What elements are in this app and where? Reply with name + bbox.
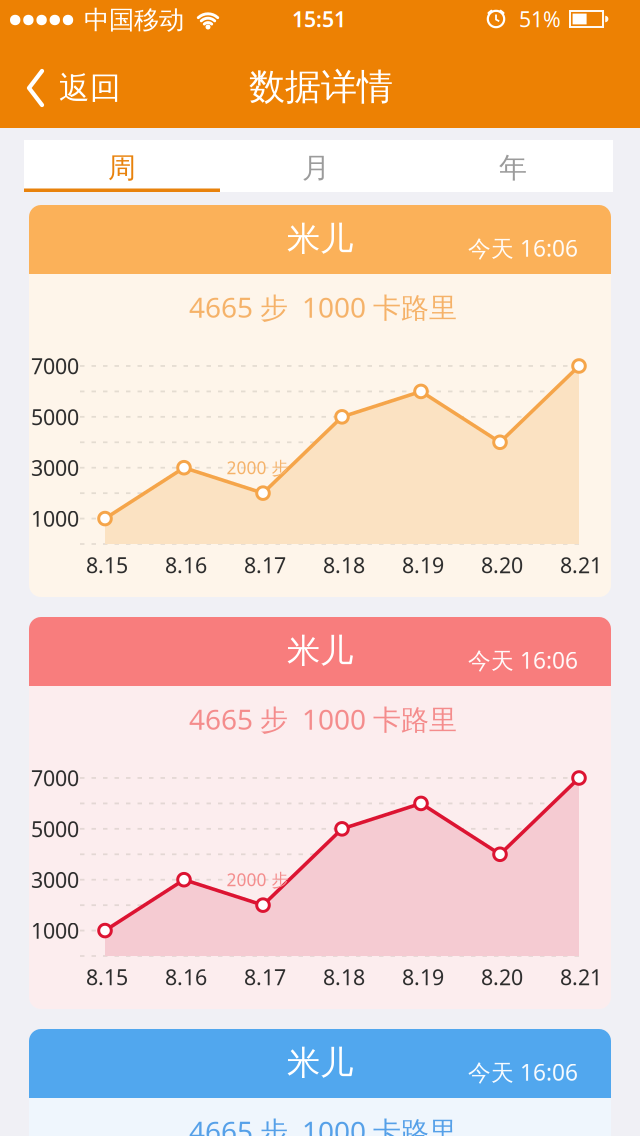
staticText: 8.20 bbox=[481, 963, 523, 991]
staticText: 8.16 bbox=[165, 551, 207, 579]
staticText: 月 bbox=[302, 151, 330, 185]
staticText: 米儿 bbox=[287, 1042, 353, 1083]
staticText: 8.15 bbox=[86, 551, 128, 579]
staticText: 米儿 bbox=[287, 218, 353, 259]
staticText: 5000 bbox=[31, 815, 79, 843]
staticText: 年 bbox=[499, 151, 527, 185]
staticText: 8.18 bbox=[323, 963, 365, 991]
staticText: 8.19 bbox=[402, 963, 444, 991]
button[interactable]: 返回 bbox=[24, 63, 134, 113]
staticText: 1000 bbox=[31, 504, 79, 533]
button[interactable]: 月 bbox=[218, 143, 414, 192]
staticText: 4665 步 1000 卡路里 bbox=[189, 288, 457, 326]
staticText: 8.17 bbox=[244, 963, 286, 991]
staticText: 返回 bbox=[59, 69, 121, 107]
staticText: 中国移动 bbox=[84, 4, 184, 35]
staticText: 8.20 bbox=[481, 551, 523, 579]
staticText: 今天 16:06 bbox=[468, 233, 578, 263]
staticText: 4665 步 1000 卡路里 bbox=[189, 1112, 457, 1136]
staticText: 8.17 bbox=[244, 551, 286, 579]
staticText: 2000 步 bbox=[226, 456, 288, 479]
staticText: 8.16 bbox=[165, 963, 207, 991]
button[interactable]: 年 bbox=[414, 143, 611, 192]
staticText: 15:51 bbox=[292, 5, 346, 33]
staticText: 7000 bbox=[31, 764, 79, 792]
staticText: 8.18 bbox=[323, 551, 365, 579]
staticText: 5000 bbox=[31, 403, 79, 431]
staticText: 8.21 bbox=[560, 963, 602, 991]
staticText: 8.15 bbox=[86, 963, 128, 991]
staticText: 今天 16:06 bbox=[468, 645, 578, 675]
staticText: 8.19 bbox=[402, 551, 444, 579]
staticText: 4665 步 1000 卡路里 bbox=[189, 700, 457, 738]
staticText: 2000 步 bbox=[226, 868, 288, 891]
staticText: 3000 bbox=[31, 865, 79, 894]
staticText: 数据详情 bbox=[249, 65, 393, 109]
staticText: 3000 bbox=[31, 453, 79, 482]
staticText: 7000 bbox=[31, 352, 79, 380]
staticText: 周 bbox=[108, 151, 136, 185]
staticText: 米儿 bbox=[287, 630, 353, 671]
staticText: 51% bbox=[519, 5, 561, 33]
staticText: 今天 16:06 bbox=[468, 1057, 578, 1087]
staticText: 1000 bbox=[31, 916, 79, 945]
staticText: 8.21 bbox=[560, 551, 602, 579]
button[interactable]: 周 bbox=[24, 143, 220, 192]
